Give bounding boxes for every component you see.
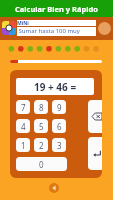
- staticText: 5: [39, 121, 44, 132]
- button[interactable]: Back: [49, 183, 59, 193]
- staticText: 9: [57, 102, 62, 113]
- button[interactable]: MiNi: [0, 17, 113, 40]
- button[interactable]: 1: [16, 138, 30, 152]
- button[interactable]: 5: [34, 119, 48, 133]
- staticText: 7: [21, 102, 26, 113]
- staticText: 4: [21, 121, 26, 132]
- button[interactable]: Backspace: [88, 100, 102, 133]
- staticText: 8: [39, 102, 44, 113]
- staticText: 2: [39, 140, 44, 151]
- button[interactable]: Enter: [88, 137, 102, 170]
- staticText: 1: [21, 140, 26, 151]
- staticText: Calcular Bien y Rápido: [15, 4, 98, 14]
- button[interactable]: 2: [34, 138, 48, 152]
- button[interactable]: 9: [52, 100, 66, 114]
- staticText: MiNi: [17, 20, 29, 26]
- button[interactable]: 7: [16, 100, 30, 114]
- button[interactable]: 4: [16, 119, 30, 133]
- button[interactable]: 0: [16, 157, 67, 171]
- staticText: 6: [57, 121, 62, 132]
- button[interactable]: 3: [52, 138, 66, 152]
- staticText: 3: [57, 140, 62, 151]
- button[interactable]: 8: [34, 100, 48, 114]
- staticText: 19 + 46 =: [34, 80, 77, 94]
- button[interactable]: 6: [52, 119, 66, 133]
- staticText: Sumar hasta 100 muy difícil: [17, 27, 96, 36]
- staticText: 0: [39, 159, 44, 170]
